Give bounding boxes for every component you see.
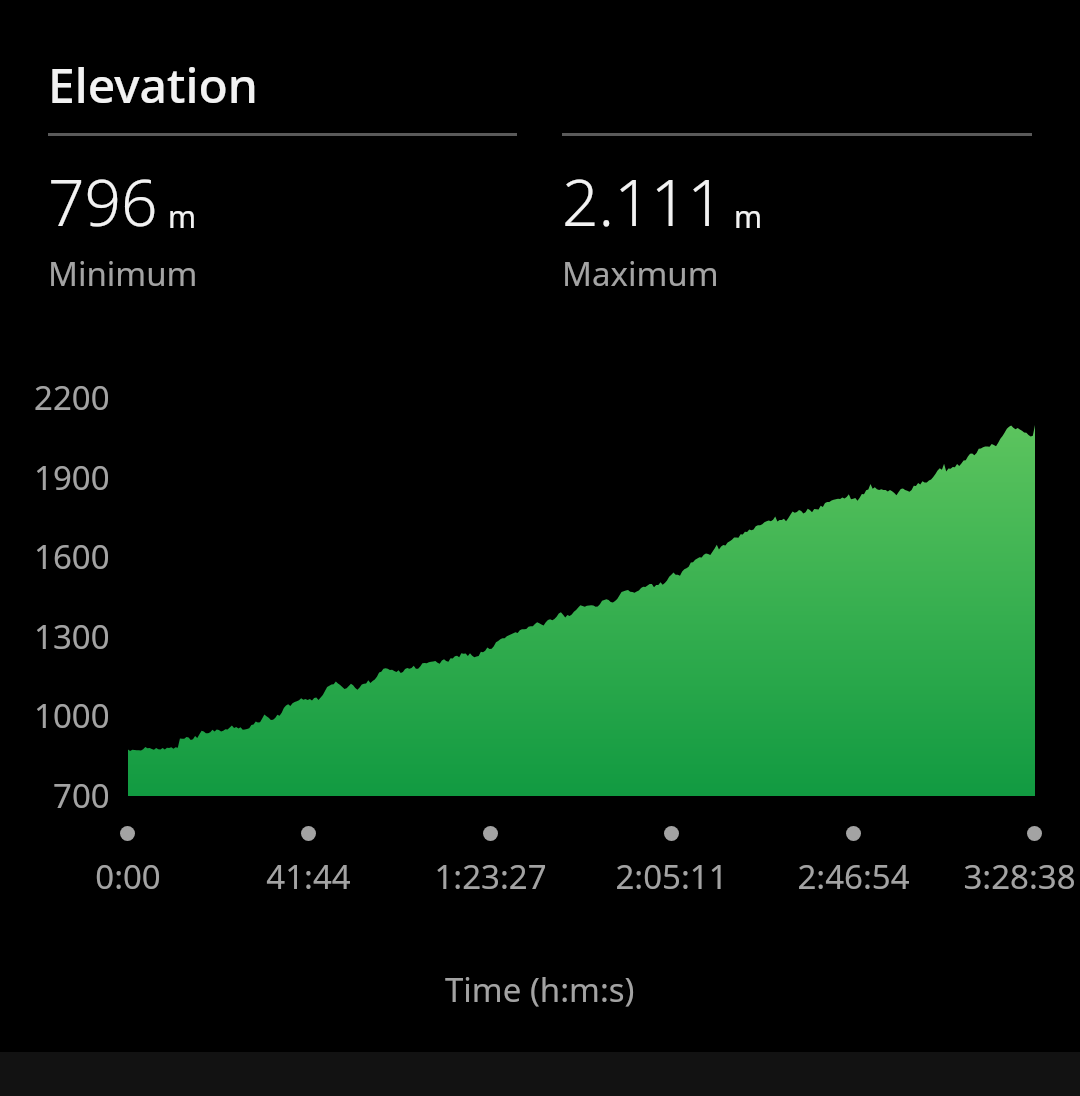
staticText: 2200 xyxy=(34,375,110,420)
button[interactable]: 796 xyxy=(48,133,517,296)
staticText: 2.111 xyxy=(562,158,724,245)
other: Elevation profile chart xyxy=(0,366,1080,896)
staticText: 1900 xyxy=(34,455,110,500)
staticText: 700 xyxy=(53,773,110,818)
staticText: m xyxy=(734,196,763,237)
staticText: 41:44 xyxy=(266,854,351,899)
staticText: Elevation xyxy=(48,52,258,117)
staticText: 796 xyxy=(48,158,158,245)
staticText: 0:00 xyxy=(95,854,161,899)
staticText: 3:28:38 xyxy=(963,854,1076,899)
staticText: 1600 xyxy=(34,534,110,579)
staticText: m xyxy=(168,196,197,237)
staticText: 1:23:27 xyxy=(434,854,547,899)
staticText: Maximum xyxy=(562,251,719,296)
staticText: Time (h:m:s) xyxy=(445,967,635,1012)
staticText: Minimum xyxy=(48,251,198,296)
staticText: 2:46:54 xyxy=(797,854,910,899)
button[interactable]: 2.111 xyxy=(562,133,1032,296)
staticText: 2:05:11 xyxy=(615,854,728,899)
staticText: 1000 xyxy=(34,693,110,738)
staticText: 1300 xyxy=(34,614,110,659)
